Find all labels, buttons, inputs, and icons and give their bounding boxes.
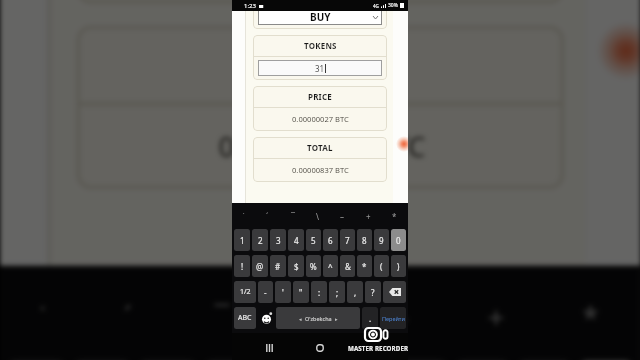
button[interactable]: 1/2 [234, 281, 256, 303]
button[interactable]: 5 [306, 229, 321, 251]
staticText: ◂ [299, 316, 302, 322]
button[interactable]: 7 [340, 229, 355, 251]
button[interactable]: ; [329, 281, 345, 303]
staticText: ? [371, 287, 375, 298]
button[interactable]: Emoji [258, 307, 274, 329]
button[interactable]: ABC [234, 307, 256, 329]
button[interactable]: 3 [270, 229, 286, 251]
button[interactable]: * [357, 255, 372, 277]
staticText: ¯ [291, 211, 295, 222]
staticText: TOTAL [273, 44, 368, 84]
button[interactable]: PRICE [76, 0, 564, 4]
button[interactable]: 6 [323, 229, 338, 251]
staticText: 9 [379, 235, 384, 246]
button[interactable]: & [340, 255, 355, 277]
button[interactable]: Period [362, 307, 378, 329]
button[interactable]: Перейти [380, 307, 406, 329]
staticText: ( [380, 261, 383, 272]
staticText: 3 [276, 235, 281, 246]
staticText: 5 [311, 235, 316, 246]
staticText: - [264, 287, 267, 298]
staticText: & [345, 261, 351, 272]
staticText: \ [316, 211, 319, 222]
button[interactable]: Home [313, 341, 327, 355]
button[interactable]: 8 [357, 229, 372, 251]
button[interactable]: 9 [374, 229, 389, 251]
staticText: ) [397, 261, 400, 272]
staticText: 1/2 [240, 287, 251, 297]
staticText: * [392, 211, 397, 222]
button[interactable]: TOKENS [253, 35, 387, 80]
staticText: 2 [258, 235, 263, 246]
staticText: ´ [266, 211, 269, 222]
staticText: ^ [328, 261, 333, 272]
staticText: * [362, 261, 367, 272]
button[interactable]: TOTAL [76, 25, 564, 189]
button[interactable]: , [347, 281, 363, 303]
button[interactable]: BUY [258, 11, 382, 25]
staticText: + [488, 295, 506, 335]
button[interactable]: ◂ [276, 307, 360, 329]
button[interactable]: PRICE [253, 86, 387, 131]
staticText: 4G [373, 3, 379, 9]
button[interactable]: ! [234, 255, 250, 277]
staticText: , [354, 287, 357, 298]
staticText: ´ [124, 295, 135, 335]
button[interactable]: ? [365, 281, 381, 303]
button[interactable]: 1 [234, 229, 250, 251]
button[interactable]: ) [391, 255, 406, 277]
staticText: * [582, 295, 601, 335]
staticText: TOTAL [307, 142, 333, 153]
staticText: 31 [315, 63, 325, 74]
button[interactable]: 0 [391, 229, 406, 251]
staticText: ˙ [243, 211, 245, 222]
button[interactable]: : [311, 281, 327, 303]
staticText: 1:23 [244, 2, 256, 10]
button[interactable]: ' [275, 281, 291, 303]
staticText: 4 [294, 235, 299, 246]
button[interactable]: - [258, 281, 273, 303]
staticText: – [393, 295, 408, 335]
staticText: ' [282, 287, 284, 298]
button[interactable]: TOTAL [253, 137, 387, 182]
staticText: 8 [362, 235, 367, 246]
staticText: 0.00000837 BTC [292, 165, 349, 175]
button[interactable]: # [270, 255, 286, 277]
button[interactable]: ^ [323, 255, 338, 277]
staticText: : [318, 287, 321, 298]
staticText: ! [241, 261, 244, 272]
button[interactable]: ( [374, 255, 389, 277]
staticText: . [369, 313, 372, 324]
button[interactable]: 4 [288, 229, 304, 251]
button[interactable]: $ [288, 255, 304, 277]
button[interactable]: " [293, 281, 309, 303]
staticText: # [275, 261, 281, 272]
staticText: – [340, 211, 344, 222]
staticText: 0.00000027 BTC [292, 114, 349, 124]
staticText: \ [306, 295, 317, 335]
staticText: Перейти [382, 315, 405, 322]
staticText: TOKENS [304, 40, 337, 51]
button[interactable]: 2 [252, 229, 268, 251]
staticText: 0 [396, 235, 401, 246]
staticText: 30% [388, 2, 398, 9]
staticText: PRICE [308, 91, 332, 102]
button[interactable]: Recents [262, 341, 276, 355]
button[interactable]: ACTION [253, 11, 387, 29]
button[interactable]: Backspace [383, 281, 406, 303]
button[interactable]: % [306, 255, 321, 277]
button[interactable]: @ [252, 255, 268, 277]
staticText: MASTER RECORDER [348, 344, 409, 352]
staticText: % [310, 261, 317, 272]
staticText: + [366, 211, 371, 222]
staticText: ; [336, 287, 339, 298]
staticText: ABC [238, 313, 252, 323]
staticText: 0.00000837 BTC [218, 127, 426, 164]
staticText: " [299, 287, 303, 298]
staticText: $ [294, 261, 299, 272]
staticText: ▸ [335, 316, 338, 322]
staticText: ¯ [215, 295, 229, 335]
staticText: @ [256, 261, 264, 272]
staticText: BUY [310, 11, 331, 24]
